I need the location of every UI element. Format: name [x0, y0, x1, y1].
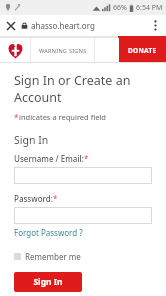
staticText: *	[14, 112, 19, 123]
staticText: ahasso.heart.org	[31, 20, 95, 31]
button[interactable]: Close	[0, 15, 21, 36]
button[interactable]: DONATE	[119, 38, 166, 62]
staticText: WARNING SIGNS	[39, 47, 87, 54]
staticText: 66%	[113, 3, 127, 13]
button[interactable]: Forgot Password ?	[14, 227, 83, 238]
staticText: Username / Email:	[14, 153, 84, 164]
staticText: 6:54 PM	[136, 3, 163, 13]
button[interactable]	[14, 167, 152, 184]
button[interactable]: More options	[145, 15, 166, 36]
button[interactable]: Remember me	[14, 251, 81, 262]
staticText: Sign In	[33, 276, 63, 288]
staticText: DONATE	[128, 46, 157, 55]
staticText: Sign In or Create an Account	[14, 72, 152, 106]
staticText: Remember me	[25, 251, 81, 262]
button[interactable]: American Heart Association home	[0, 38, 30, 62]
staticText: *	[84, 153, 89, 164]
button[interactable]: Sign In	[14, 272, 82, 292]
button[interactable]: WARNING SIGNS	[31, 38, 94, 62]
staticText: Sign In	[14, 133, 49, 147]
staticText: *	[53, 193, 58, 204]
button[interactable]	[14, 207, 152, 224]
staticText: Password:	[14, 193, 53, 204]
staticText: Forgot Password ?	[14, 227, 83, 238]
staticText: indicates a required field	[19, 112, 106, 122]
